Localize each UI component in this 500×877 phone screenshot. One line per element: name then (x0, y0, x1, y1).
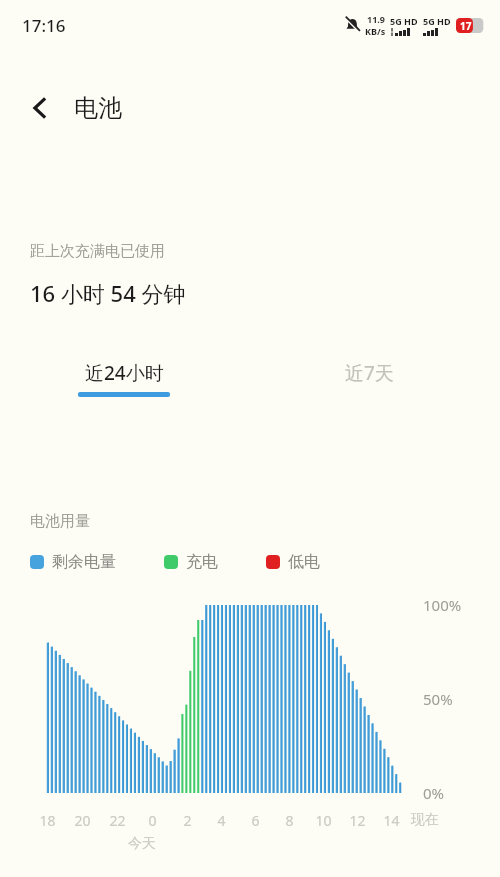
staticText: 17 (460, 19, 472, 33)
staticText: 14 (383, 811, 400, 830)
staticText: KB/s (365, 25, 386, 37)
staticText: 0% (423, 783, 445, 803)
staticText: 5G (390, 15, 402, 27)
button[interactable]: 充电 (164, 552, 218, 572)
staticText: 电池用量 (30, 512, 90, 531)
staticText: 2 (183, 811, 192, 830)
staticText: 12 (349, 811, 366, 830)
staticText: 近24小时 (85, 360, 164, 386)
staticText: 6 (251, 811, 260, 830)
button[interactable]: Back (20, 88, 60, 128)
staticText: 50% (423, 689, 453, 709)
staticText: 20 (74, 811, 91, 830)
button[interactable]: 近24小时 (78, 360, 170, 397)
staticText: 16 小时 54 分钟 (30, 278, 186, 308)
staticText: 充电 (186, 552, 218, 572)
staticText: 22 (109, 811, 126, 830)
staticText: 电池 (74, 93, 122, 123)
staticText: 0 (148, 811, 157, 830)
staticText: 17:16 (22, 14, 66, 37)
staticText: HD (404, 15, 418, 27)
staticText: 5G (423, 15, 435, 27)
staticText: 8 (285, 811, 294, 830)
staticText: 11.9 (367, 13, 385, 25)
staticText: 低电 (288, 552, 320, 572)
staticText: 剩余电量 (52, 552, 116, 572)
staticText: 4 (217, 811, 226, 830)
staticText: 10 (315, 811, 332, 830)
staticText: 距上次充满电已使用 (30, 242, 165, 261)
button[interactable]: 低电 (266, 552, 320, 572)
button[interactable]: 近7天 (345, 360, 394, 386)
staticText: 近7天 (345, 360, 394, 386)
staticText: 100% (423, 595, 462, 615)
staticText: 现在 (411, 811, 439, 829)
staticText: 18 (39, 811, 56, 830)
staticText: 今天 (128, 835, 156, 853)
button[interactable]: 剩余电量 (30, 552, 116, 572)
staticText: HD (437, 15, 451, 27)
